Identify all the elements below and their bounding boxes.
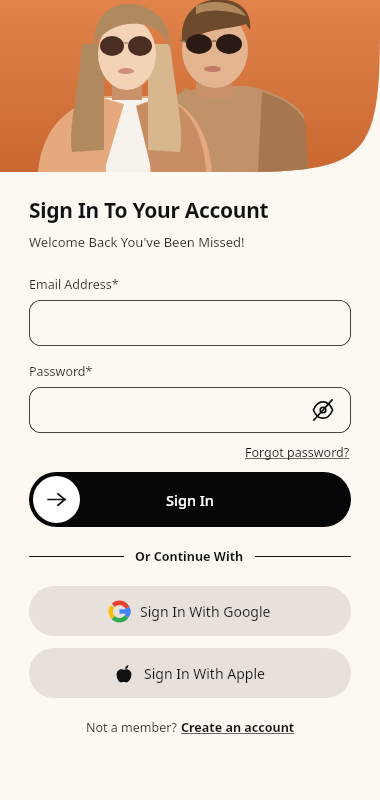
button[interactable]: Sign In With Apple [29, 648, 351, 698]
staticText: Sign In With Apple [144, 664, 265, 683]
button[interactable]: Create an account [181, 717, 295, 738]
button[interactable] [29, 300, 351, 346]
button[interactable]: Forgot password? [244, 442, 351, 463]
staticText: Or Continue With [135, 548, 244, 565]
staticText: Email Address* [29, 276, 119, 293]
staticText: Password* [29, 363, 93, 380]
button[interactable]: Show password [311, 398, 335, 422]
staticText: Sign In To Your Account [29, 196, 269, 225]
staticText: Welcome Back You've Been Missed! [29, 233, 245, 251]
staticText: Sign In With Google [140, 602, 271, 621]
staticText: Not a member? [86, 719, 181, 736]
staticText: Sign In [166, 490, 214, 510]
button[interactable]: Sign In With Google [29, 586, 351, 636]
button[interactable]: Show password [29, 387, 351, 433]
button[interactable]: Sign In [29, 472, 351, 527]
